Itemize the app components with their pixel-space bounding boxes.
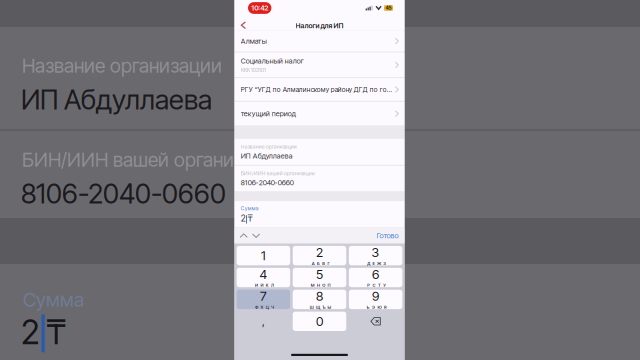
staticText: Сумма bbox=[241, 205, 259, 212]
button[interactable]: Социальный налог bbox=[234, 53, 404, 77]
staticText: 2 bbox=[316, 245, 323, 260]
staticText: 9 bbox=[372, 288, 379, 304]
staticText: РГУ “УГД по Алмалинскому району ДГД по г… bbox=[241, 85, 392, 94]
staticText: 5 bbox=[316, 267, 323, 282]
button[interactable]: 2 bbox=[293, 246, 346, 265]
staticText: текущий период bbox=[241, 109, 296, 118]
button[interactable]: , bbox=[237, 312, 290, 331]
button[interactable]: 6 bbox=[349, 268, 402, 287]
staticText: 1 bbox=[261, 248, 266, 263]
staticText: ККК 103101 bbox=[241, 66, 266, 73]
staticText: МНОП bbox=[311, 283, 331, 288]
staticText: 10:42 bbox=[251, 4, 268, 12]
staticText: Название организации bbox=[22, 54, 222, 77]
staticText: Сумма bbox=[23, 288, 84, 311]
button[interactable]: 4 bbox=[237, 268, 290, 287]
staticText: Налоги для ИП bbox=[295, 21, 343, 30]
staticText: 4 bbox=[259, 267, 267, 282]
button[interactable]: Предыдущее поле bbox=[234, 228, 248, 243]
staticText: 2 bbox=[21, 312, 40, 352]
staticText: , bbox=[262, 315, 265, 328]
button[interactable]: 0 bbox=[293, 312, 346, 331]
staticText: БИН/ИИН вашей организации bbox=[241, 170, 315, 177]
button[interactable]: 9 bbox=[349, 290, 402, 309]
staticText: ДЕЖЗ bbox=[367, 261, 386, 266]
staticText: 3 bbox=[372, 245, 380, 260]
button[interactable]: Следующее поле bbox=[248, 228, 260, 243]
button[interactable]: 8 bbox=[293, 290, 346, 309]
staticText: ШЩЪЫ bbox=[310, 305, 332, 310]
staticText: ИП Абдуллаева bbox=[21, 83, 212, 116]
button[interactable]: текущий период bbox=[234, 102, 404, 126]
staticText: ₸ bbox=[247, 213, 252, 224]
staticText: Социальный налог bbox=[241, 56, 304, 65]
staticText: 8106-2040-0660 bbox=[241, 178, 294, 187]
staticText: Готово bbox=[376, 231, 398, 240]
staticText: 45 bbox=[385, 5, 391, 11]
staticText: Название организации bbox=[241, 143, 297, 150]
button[interactable]: Готово bbox=[376, 227, 404, 244]
staticText: АБВГ bbox=[312, 261, 330, 266]
staticText: РСТУ bbox=[367, 283, 386, 288]
staticText: БИН/ИИН вашей организации bbox=[22, 148, 286, 171]
button[interactable]: Назад bbox=[234, 16, 250, 30]
button[interactable]: 3 bbox=[349, 246, 402, 265]
staticText: 8106-2040-0660 bbox=[21, 177, 226, 210]
staticText: ₸ bbox=[46, 312, 66, 352]
staticText: ИП Абдуллаева bbox=[241, 151, 293, 160]
staticText: 6 bbox=[372, 267, 379, 282]
staticText: ИЙКЛ bbox=[255, 283, 274, 288]
button[interactable]: Удалить bbox=[349, 312, 402, 331]
staticText: 2 bbox=[241, 213, 246, 224]
staticText: 0 bbox=[316, 314, 323, 329]
button[interactable]: 1 bbox=[237, 246, 290, 265]
button[interactable]: 7 bbox=[237, 290, 290, 309]
staticText: 8 bbox=[316, 288, 323, 304]
button[interactable]: РГУ “УГД по Алмалинскому району ДГД по г… bbox=[234, 78, 404, 101]
button[interactable]: 5 bbox=[293, 268, 346, 287]
button[interactable]: Алматы bbox=[234, 30, 404, 52]
staticText: ЬЭЮЯ bbox=[367, 305, 387, 310]
staticText: ФХЦЧ bbox=[255, 305, 274, 310]
staticText: 7 bbox=[260, 288, 267, 304]
staticText: Алматы bbox=[241, 37, 267, 45]
